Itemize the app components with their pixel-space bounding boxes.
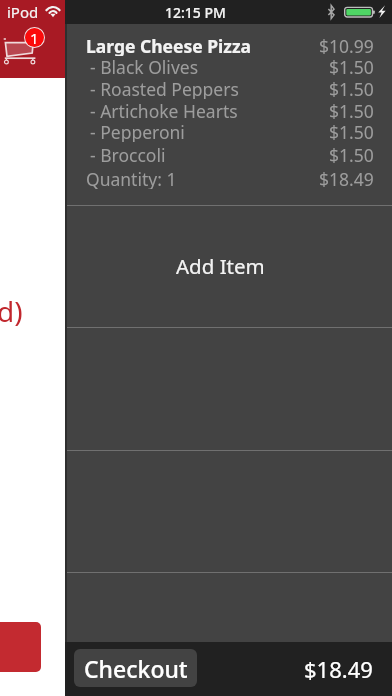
staticText: $1.50 [329, 77, 374, 99]
button[interactable]: Large Cheese Pizza [65, 24, 392, 205]
staticText: 12:15 PM [165, 3, 226, 22]
staticText: $1.50 [329, 55, 374, 77]
staticText: $1.50 [329, 99, 374, 121]
staticText: - Artichoke Hearts [90, 99, 238, 121]
button[interactable] [0, 622, 41, 672]
button[interactable]: Add Item [65, 206, 392, 327]
staticText: d) [0, 292, 23, 330]
staticText: Add Item [176, 252, 265, 280]
staticText: Quantity: 1 [86, 167, 177, 189]
staticText: $1.50 [329, 120, 374, 142]
staticText: $18.49 [304, 654, 373, 684]
staticText: Checkout [84, 653, 188, 684]
staticText: iPod [7, 2, 39, 22]
staticText: $1.50 [329, 143, 374, 165]
staticText: - Broccoli [90, 143, 166, 165]
staticText: 1 [30, 28, 39, 47]
staticText: $18.49 [319, 167, 374, 189]
staticText: - Roasted Peppers [90, 77, 239, 99]
button[interactable]: Shopping cart, 1 item [0, 24, 50, 69]
staticText: - Pepperoni [90, 120, 185, 142]
staticText: Large Cheese Pizza [86, 34, 252, 56]
button[interactable]: Checkout [74, 649, 197, 687]
staticText: - Black Olives [90, 55, 199, 77]
staticText: $10.99 [319, 34, 374, 56]
